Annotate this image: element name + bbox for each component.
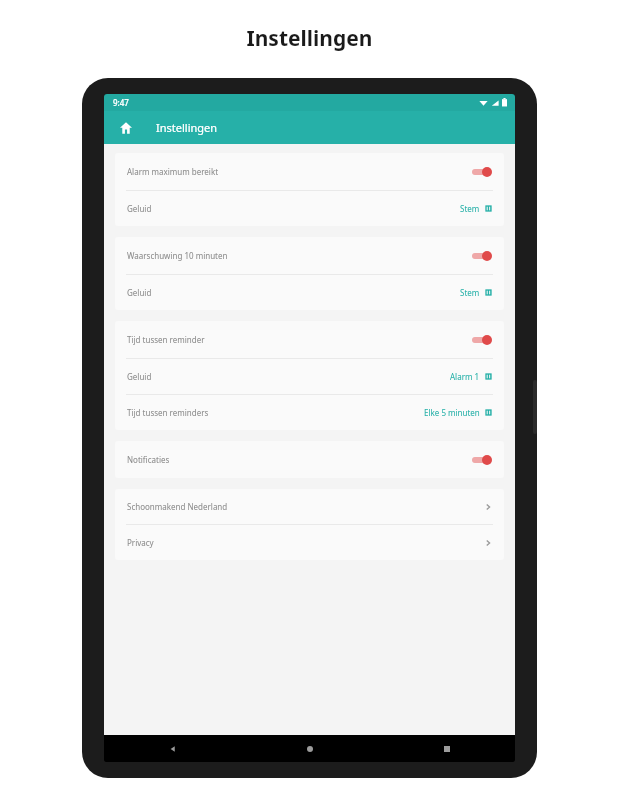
button[interactable]: Waarschuwing 10 minuten <box>115 237 504 274</box>
button[interactable]: Home <box>116 118 136 138</box>
staticText: Stem <box>460 287 480 298</box>
staticText: Instellingen <box>156 120 218 135</box>
button[interactable]: Alarm maximum bereikt <box>115 153 504 190</box>
button[interactable]: Home <box>241 735 378 762</box>
staticText: Waarschuwing 10 minuten <box>127 250 470 261</box>
staticText: Instellingen <box>0 24 619 53</box>
button[interactable]: Back <box>104 735 241 762</box>
button[interactable]: Geluid <box>115 275 504 310</box>
button[interactable]: Schoonmakend Nederland <box>115 489 504 524</box>
staticText: Alarm maximum bereikt <box>127 166 470 177</box>
button[interactable]: Geluid <box>115 191 504 226</box>
button[interactable]: Geluid <box>115 359 504 394</box>
staticText: Stem <box>460 203 480 214</box>
staticText: 9:47 <box>113 97 129 108</box>
staticText: Tijd tussen reminders <box>127 407 424 418</box>
staticText: Geluid <box>127 371 450 382</box>
button[interactable]: Toggle setting <box>470 165 492 179</box>
button[interactable]: Notificaties <box>115 441 504 478</box>
staticText: Schoonmakend Nederland <box>127 501 484 512</box>
staticText: Notificaties <box>127 454 470 465</box>
staticText: Elke 5 minuten <box>424 407 480 418</box>
staticText: Alarm 1 <box>450 371 480 382</box>
button[interactable]: Toggle setting <box>470 453 492 467</box>
button[interactable]: Privacy <box>115 525 504 560</box>
staticText: Geluid <box>127 287 460 298</box>
staticText: Geluid <box>127 203 460 214</box>
staticText: Tijd tussen reminder <box>127 334 470 345</box>
button[interactable]: Toggle setting <box>470 333 492 347</box>
button[interactable]: Recent apps <box>378 735 515 762</box>
button[interactable]: Tijd tussen reminder <box>115 321 504 358</box>
staticText: Privacy <box>127 537 484 548</box>
button[interactable]: Tijd tussen reminders <box>115 395 504 430</box>
button[interactable]: Toggle setting <box>470 249 492 263</box>
